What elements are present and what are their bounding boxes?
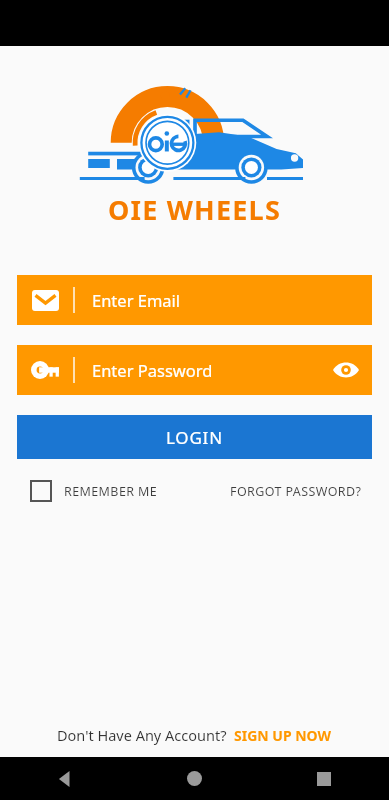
button[interactable]: Enter Email <box>17 275 372 325</box>
button[interactable]: Home <box>129 757 259 800</box>
staticText: OIE WHEELS <box>108 191 281 228</box>
staticText: Don't Have Any Account? <box>57 725 227 745</box>
button[interactable]: LOGIN <box>17 415 372 459</box>
button[interactable]: REMEMBER ME <box>30 480 158 502</box>
button[interactable]: FORGOT PASSWORD? <box>230 483 362 500</box>
staticText: FORGOT PASSWORD? <box>230 483 362 500</box>
staticText: LOGIN <box>166 426 223 449</box>
button[interactable]: SIGN UP NOW <box>234 726 332 745</box>
button[interactable]: Recent apps <box>259 757 389 800</box>
staticText: SIGN UP NOW <box>234 726 332 745</box>
button[interactable]: Back <box>0 757 129 800</box>
staticText: REMEMBER ME <box>64 483 158 500</box>
staticText: Enter Email <box>92 289 181 311</box>
button[interactable]: Enter Password <box>17 345 372 395</box>
staticText: Enter Password <box>92 359 320 381</box>
button[interactable]: Show password <box>320 345 372 395</box>
